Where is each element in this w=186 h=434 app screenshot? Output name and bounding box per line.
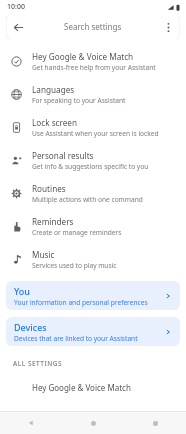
staticText: Devices that are linked to your Assistan… [14,334,138,343]
staticText: Hey Google & Voice Match [32,51,134,62]
button[interactable]: Devices [6,317,180,346]
button[interactable]: You [6,281,180,310]
button[interactable]: Routines [0,177,186,210]
staticText: Your information and personal preference… [14,298,148,307]
button[interactable]: More options [156,15,180,39]
staticText: Languages [32,84,75,95]
staticText: Use Assistant when your screen is locked [32,129,159,138]
button[interactable]: Reminders [0,210,186,243]
button[interactable]: Lock screen [0,111,186,144]
button[interactable]: Music [0,243,186,276]
button[interactable]: Personal results [0,144,186,177]
staticText: Search settings [64,21,122,32]
staticText: Multiple actions with one command [32,195,143,204]
staticText: Create or manage reminders [32,228,122,237]
button[interactable]: Languages [0,78,186,111]
button[interactable]: Back [0,412,62,434]
staticText: Devices [14,321,47,333]
staticText: Services used to play music [32,261,117,270]
staticText: 10:00 [7,2,25,12]
staticText: Reminders [32,216,74,227]
button[interactable]: Hey Google & Voice Match [0,45,186,78]
staticText: For speaking to your Assistant [32,96,126,105]
staticText: ALL SETTINGS [13,359,63,368]
staticText: Hey Google & Voice Match [32,382,131,393]
staticText: Get info & suggestions specific to you [32,162,149,171]
staticText: Routines [32,183,66,194]
staticText: You [14,285,30,297]
button[interactable]: Hey Google & Voice Match [0,379,186,395]
staticText: Get hands-free help from your Assistant [32,63,156,72]
staticText: Lock screen [32,117,78,128]
button[interactable]: Recents [124,412,186,434]
button[interactable]: Back [6,15,30,39]
staticText: Personal results [32,150,94,161]
staticText: Music [32,249,55,260]
button[interactable]: Home [62,412,124,434]
